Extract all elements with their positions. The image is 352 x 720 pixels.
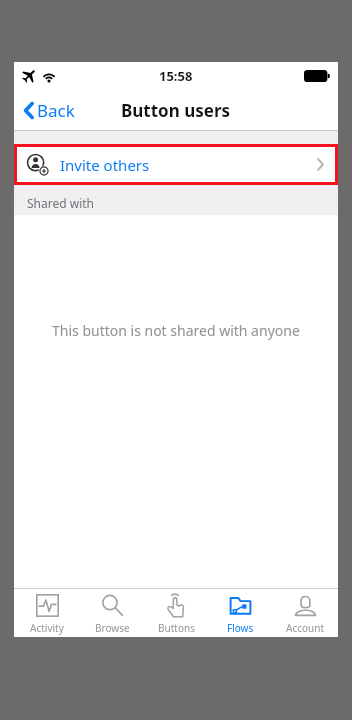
staticText: Invite others bbox=[60, 155, 150, 175]
button[interactable]: Invite others bbox=[14, 144, 338, 185]
button[interactable]: Flows bbox=[209, 589, 271, 637]
staticText: Buttons bbox=[158, 621, 195, 635]
staticText: Browse bbox=[95, 621, 130, 635]
button[interactable]: Browse bbox=[81, 589, 143, 637]
other: Open bbox=[316, 157, 325, 172]
staticText: 15:58 bbox=[159, 67, 193, 85]
staticText: Back bbox=[37, 99, 75, 122]
staticText: Account bbox=[286, 621, 325, 635]
button[interactable]: Activity bbox=[16, 589, 78, 637]
staticText: Button users bbox=[121, 99, 231, 122]
button[interactable]: Account bbox=[274, 589, 336, 637]
staticText: Flows bbox=[227, 621, 254, 635]
staticText: Activity bbox=[30, 621, 64, 635]
staticText: This button is not shared with anyone bbox=[52, 321, 300, 340]
button[interactable]: Buttons bbox=[145, 589, 207, 637]
staticText: Shared with bbox=[27, 195, 94, 211]
button[interactable]: Back bbox=[14, 93, 85, 128]
